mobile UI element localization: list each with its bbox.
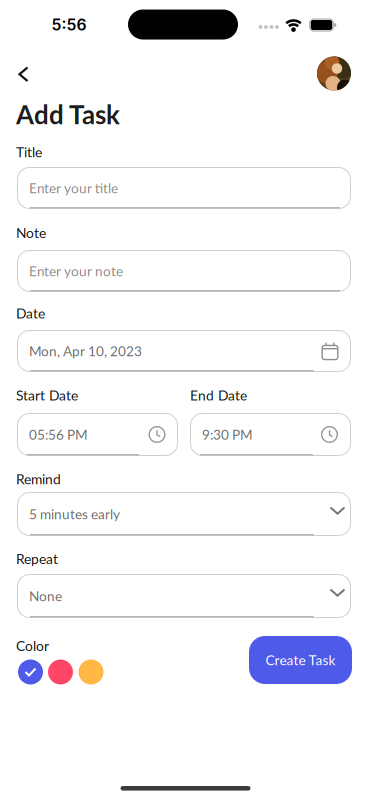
staticText: Enter your title xyxy=(29,180,118,196)
button[interactable]: None xyxy=(17,574,351,618)
staticText: Mon, Apr 10, 2023 xyxy=(29,343,142,359)
staticText: Note xyxy=(16,224,46,241)
staticText: Enter your note xyxy=(29,263,123,279)
staticText: 5:56 xyxy=(51,15,86,34)
staticText: None xyxy=(29,588,62,604)
button[interactable]: Enter your note xyxy=(17,250,351,292)
staticText: 5 minutes early xyxy=(29,506,120,522)
button[interactable]: Yellow color xyxy=(78,659,103,684)
staticText: Color xyxy=(16,637,49,654)
staticText: Date xyxy=(16,305,45,322)
button[interactable]: Back xyxy=(8,59,38,89)
staticText: Create Task xyxy=(265,652,335,668)
staticText: 05:56 PM xyxy=(29,426,88,443)
staticText: Add Task xyxy=(16,99,120,130)
staticText: Remind xyxy=(16,471,61,487)
button[interactable]: 05:56 PM xyxy=(17,413,178,456)
button[interactable]: Mon, Apr 10, 2023 xyxy=(17,330,351,372)
button[interactable]: Profile xyxy=(317,56,351,90)
staticText: End Date xyxy=(190,387,247,404)
staticText: Start Date xyxy=(16,387,78,404)
button[interactable]: Blue color, selected xyxy=(18,659,43,684)
staticText: Title xyxy=(16,144,42,160)
button[interactable]: Pink color xyxy=(48,659,73,684)
button[interactable]: Create Task xyxy=(249,636,352,684)
button[interactable]: Enter your title xyxy=(17,167,351,209)
button[interactable]: 5 minutes early xyxy=(17,492,351,536)
staticText: 9:30 PM xyxy=(202,426,253,443)
button[interactable]: 9:30 PM xyxy=(190,413,351,456)
staticText: Repeat xyxy=(16,550,58,567)
